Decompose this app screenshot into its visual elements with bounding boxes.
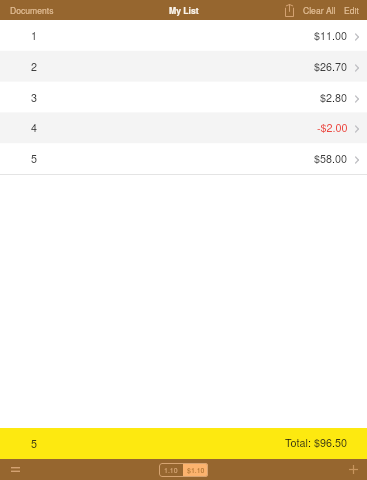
staticText: $2.80 — [320, 90, 348, 105]
staticText: $1.10 — [187, 465, 205, 475]
button[interactable]: 4 — [0, 112, 367, 143]
button[interactable]: 1.10 — [159, 463, 183, 477]
button[interactable]: Clear All — [301, 0, 338, 20]
staticText: Edit — [344, 4, 359, 16]
staticText: Documents — [10, 4, 54, 16]
staticText: 5 — [31, 436, 38, 451]
button[interactable]: 3 — [0, 82, 367, 113]
staticText: 1.10 — [164, 465, 178, 475]
button[interactable]: Add — [339, 459, 367, 480]
staticText: Clear All — [303, 4, 336, 16]
button[interactable]: $1.10 — [183, 463, 208, 477]
staticText: $26.70 — [314, 59, 348, 74]
button[interactable]: Menu — [0, 459, 30, 480]
staticText: 5 — [31, 151, 38, 166]
staticText: 4 — [31, 120, 38, 135]
staticText: Total: $96.50 — [285, 435, 347, 450]
button[interactable]: Share — [282, 0, 297, 20]
staticText: $11.00 — [314, 28, 348, 43]
staticText: 3 — [31, 90, 38, 105]
button[interactable]: Edit — [342, 0, 367, 20]
staticText: 1 — [31, 28, 38, 43]
staticText: 2 — [31, 59, 38, 74]
button[interactable]: 5 — [0, 143, 367, 174]
staticText: $58.00 — [314, 151, 348, 166]
button[interactable]: 1 — [0, 20, 367, 51]
staticText: -$2.00 — [317, 120, 348, 135]
button[interactable]: 2 — [0, 51, 367, 82]
button[interactable]: Documents — [0, 0, 60, 20]
staticText: My List — [169, 4, 199, 16]
